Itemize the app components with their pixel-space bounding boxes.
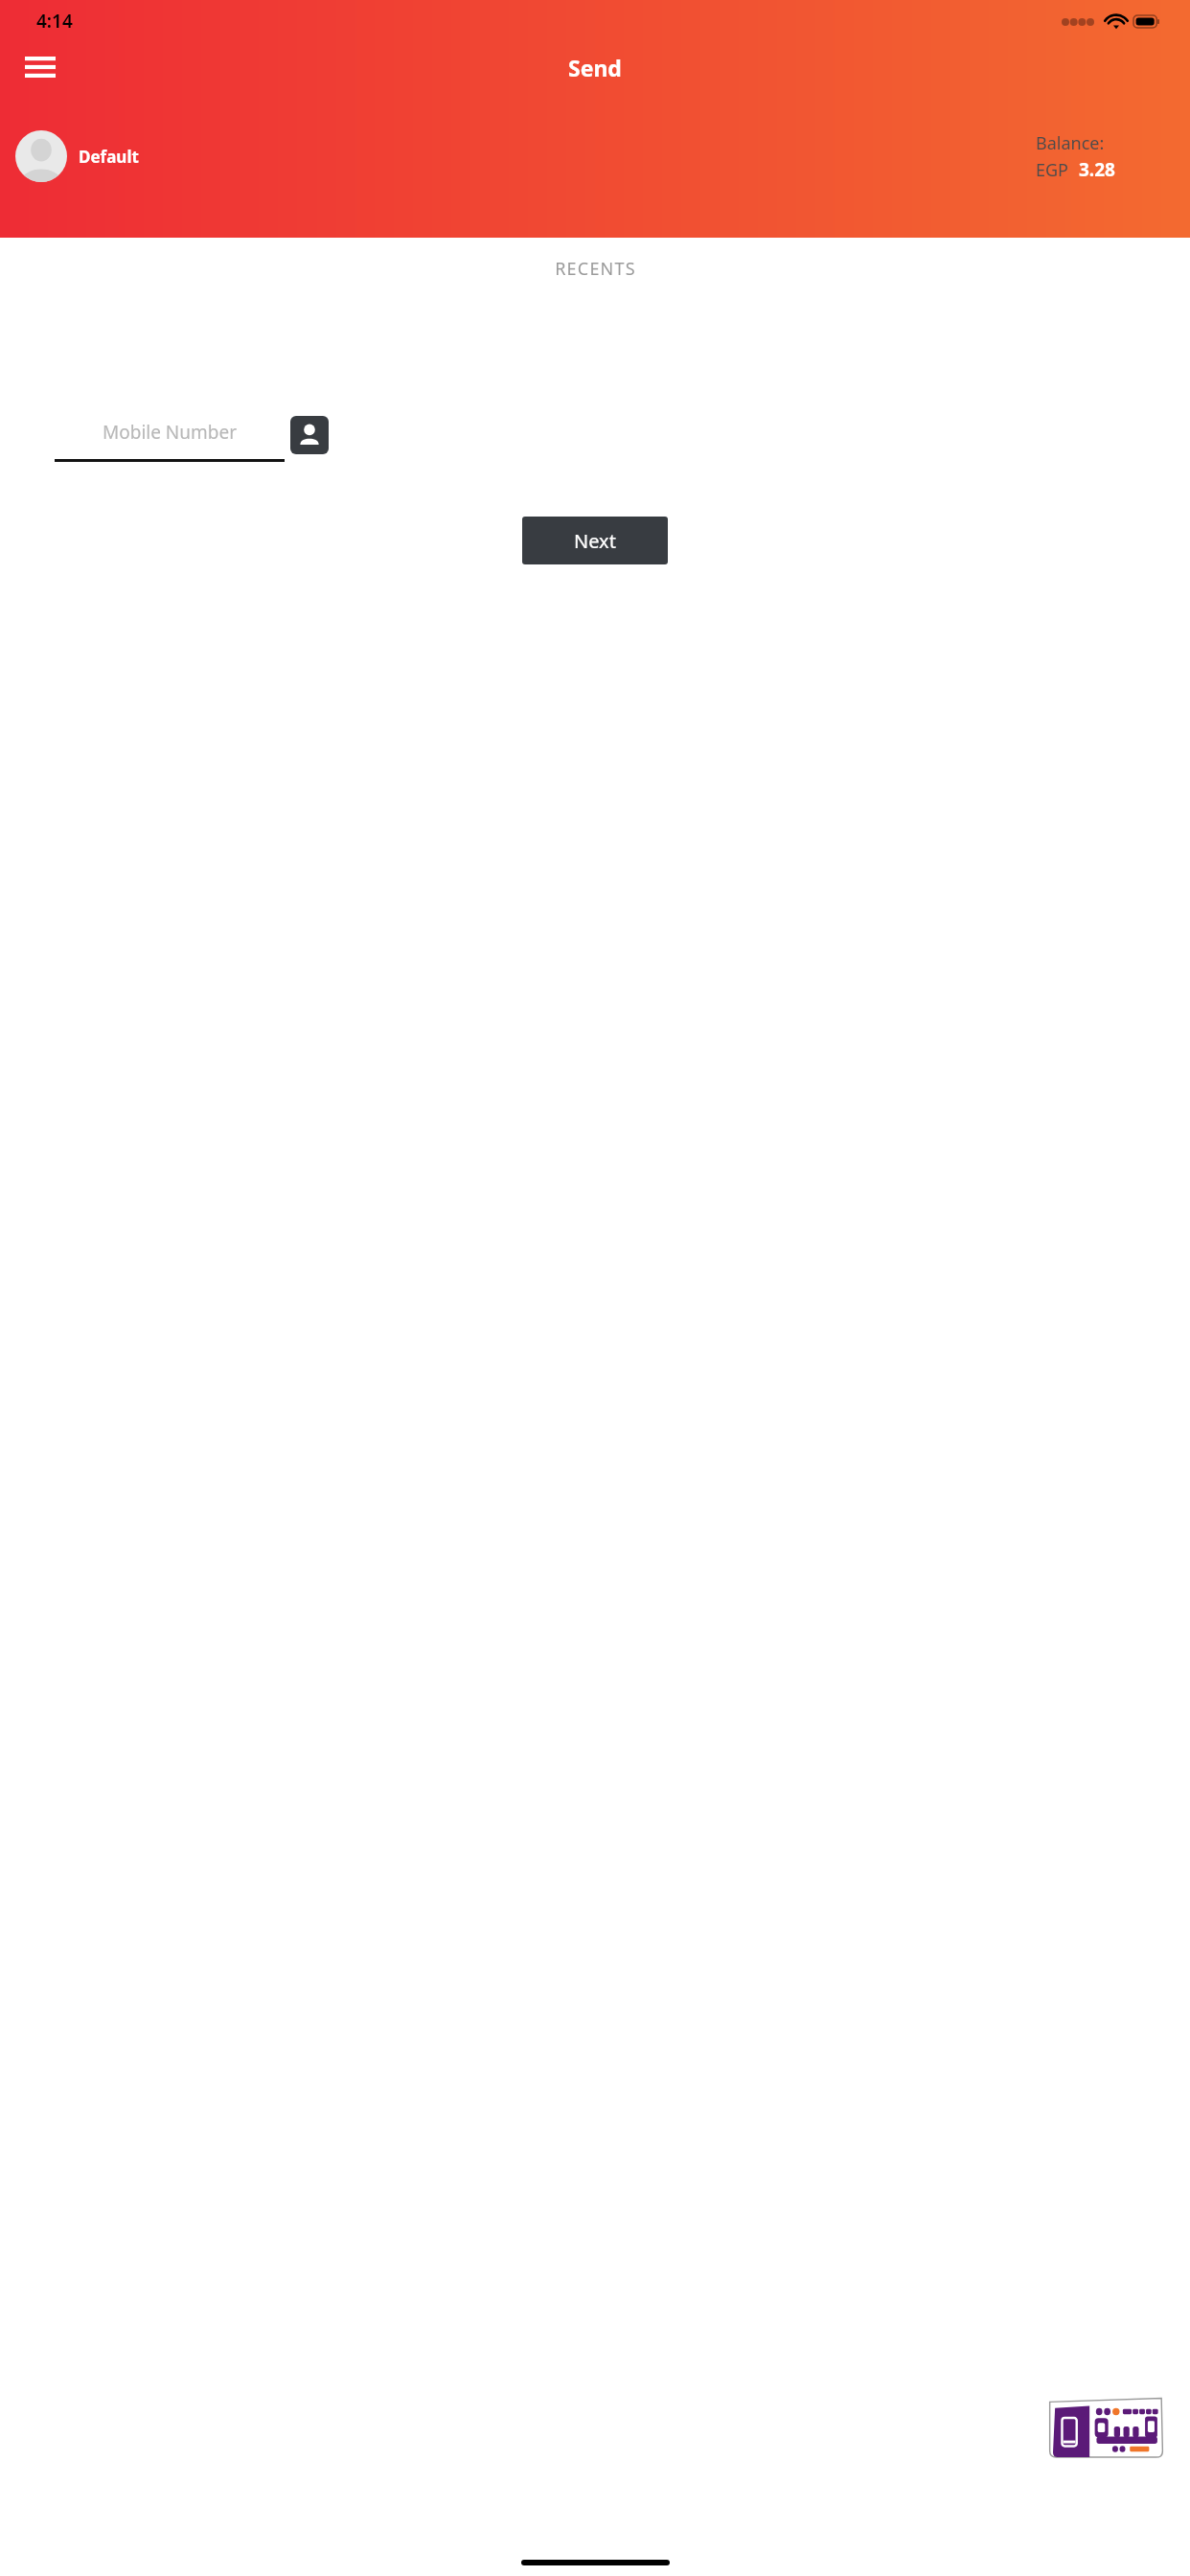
- staticText: Balance:: [1036, 131, 1105, 155]
- button[interactable]: Menu: [21, 48, 59, 86]
- staticText: 3.28: [1079, 157, 1115, 182]
- staticText: Send: [568, 53, 622, 82]
- staticText: RECENTS: [555, 257, 636, 281]
- button[interactable]: Next: [522, 517, 668, 564]
- button[interactable]: Profile: [15, 130, 67, 182]
- staticText: 4:14: [36, 9, 73, 34]
- staticText: Default: [79, 146, 139, 168]
- staticText: EGP: [1036, 158, 1069, 182]
- staticText: Mobile Number: [103, 420, 238, 445]
- staticText: Next: [574, 528, 616, 554]
- button[interactable]: Mobile Number: [55, 408, 285, 462]
- button[interactable]: Choose contact: [290, 416, 329, 454]
